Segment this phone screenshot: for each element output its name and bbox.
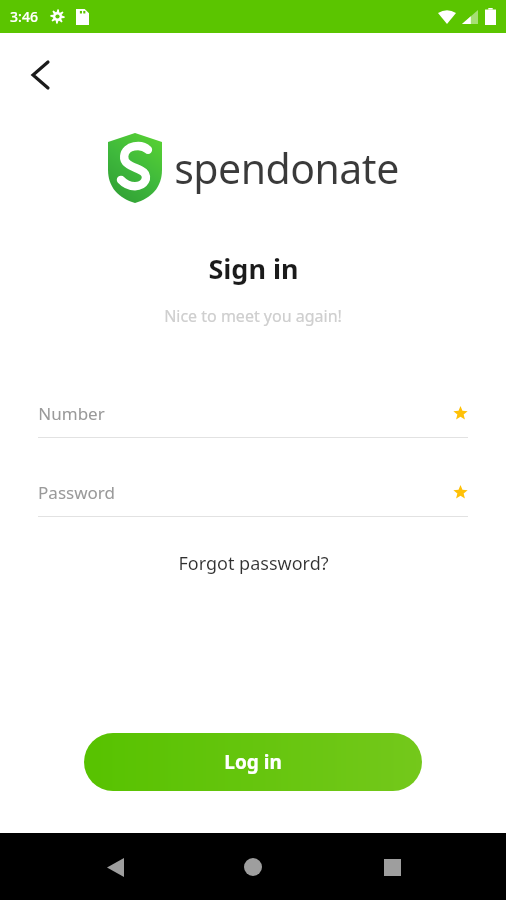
button[interactable]: Log in: [84, 733, 422, 791]
staticText: Forgot password?: [178, 551, 329, 576]
button[interactable]: Home: [229, 843, 277, 891]
staticText: Sign in: [208, 250, 299, 287]
button[interactable]: Forgot password?: [164, 545, 343, 582]
staticText: spendonate: [174, 140, 399, 196]
staticText: Password: [38, 481, 115, 504]
staticText: Number: [38, 402, 105, 425]
button[interactable]: Recent apps: [368, 843, 416, 891]
staticText: Nice to meet you again!: [164, 305, 342, 327]
staticText: 3:46: [10, 7, 38, 26]
button[interactable]: Back: [91, 843, 139, 891]
button[interactable]: Password: [38, 481, 468, 517]
button[interactable]: Number: [38, 402, 468, 438]
staticText: Log in: [224, 749, 282, 775]
button[interactable]: Back: [14, 49, 66, 101]
